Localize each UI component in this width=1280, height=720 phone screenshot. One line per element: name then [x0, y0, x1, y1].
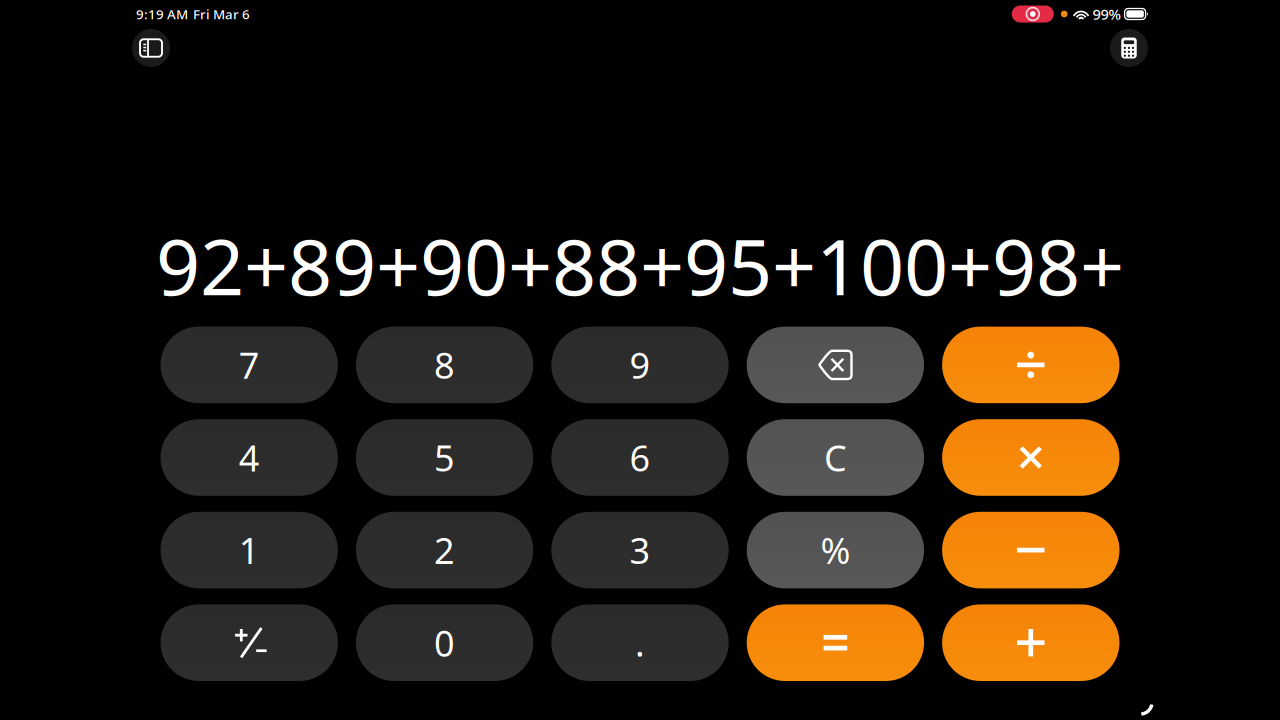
- button[interactable]: 9: [551, 327, 729, 403]
- staticText: 9:19 AM: [136, 5, 188, 23]
- staticText: 3: [629, 526, 650, 574]
- staticText: 4: [239, 434, 260, 481]
- button[interactable]: Show Sidebar: [132, 29, 170, 67]
- button[interactable]: Plus Minus: [160, 604, 338, 681]
- staticText: 0: [434, 619, 455, 667]
- button[interactable]: Minus: [942, 512, 1119, 588]
- button[interactable]: 4: [160, 419, 338, 496]
- staticText: 99%: [1093, 4, 1121, 24]
- staticText: 1: [239, 526, 260, 574]
- button[interactable]: Calculator Mode: [1110, 29, 1148, 67]
- button[interactable]: Equals: [747, 604, 924, 681]
- staticText: 6: [629, 434, 650, 481]
- button[interactable]: 3: [551, 512, 729, 588]
- staticText: .: [635, 619, 645, 667]
- button[interactable]: 0: [356, 604, 533, 681]
- staticText: %: [820, 526, 850, 574]
- button[interactable]: Plus: [942, 604, 1119, 681]
- button[interactable]: 5: [356, 419, 533, 496]
- button[interactable]: Multiply: [942, 419, 1119, 496]
- button[interactable]: Decimal Point: [551, 604, 729, 681]
- button[interactable]: 2: [356, 512, 533, 588]
- button[interactable]: 7: [160, 327, 338, 403]
- button[interactable]: 1: [160, 512, 338, 588]
- staticText: Fri Mar 6: [193, 5, 250, 23]
- staticText: 7: [239, 341, 260, 389]
- button[interactable]: Delete: [747, 327, 924, 403]
- button[interactable]: 6: [551, 419, 729, 496]
- staticText: 9: [629, 341, 650, 389]
- staticText: C: [824, 434, 847, 481]
- staticText: 5: [434, 434, 455, 481]
- staticText: 8: [434, 341, 455, 389]
- button[interactable]: 8: [356, 327, 533, 403]
- button[interactable]: Divide: [942, 327, 1119, 403]
- button[interactable]: Percent: [747, 512, 924, 588]
- staticText: 92+89+90+88+95+100+98+: [156, 214, 1124, 317]
- button[interactable]: Clear: [747, 419, 924, 496]
- staticText: 2: [434, 526, 455, 574]
